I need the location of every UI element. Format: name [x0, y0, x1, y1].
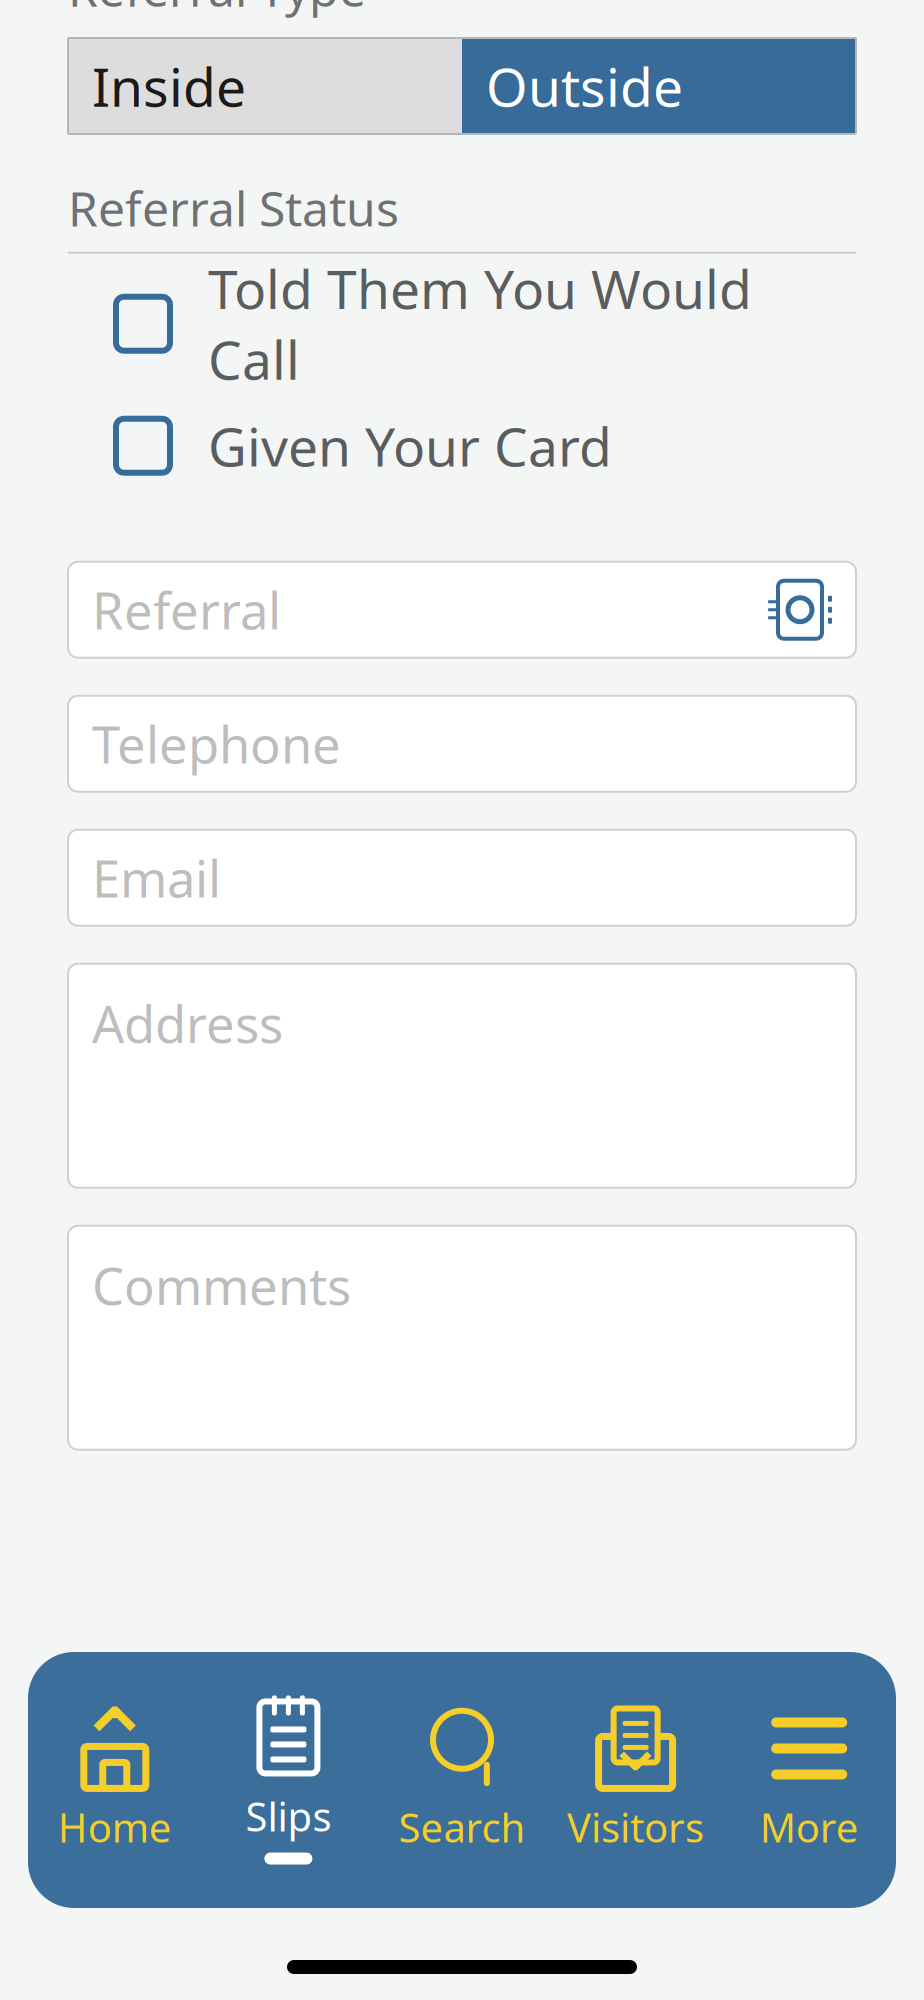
staticText: Comments: [92, 1252, 351, 1319]
button[interactable]: Outside: [462, 38, 856, 134]
staticText: Slips: [245, 1789, 331, 1842]
staticText: Visitors: [567, 1800, 704, 1853]
button[interactable]: ⌃: [28, 1688, 202, 1871]
button[interactable]: Slips: [202, 1677, 375, 1882]
staticText: More: [760, 1800, 859, 1853]
button[interactable]: More: [722, 1688, 896, 1871]
button[interactable]: Given Your Card: [68, 408, 856, 484]
button[interactable]: ⌄: [549, 1688, 722, 1871]
staticText: ⌃: [73, 1688, 156, 1800]
staticText: Outside: [486, 51, 683, 121]
staticText: Search: [398, 1800, 525, 1853]
staticText: Given Your Card: [208, 410, 612, 481]
button[interactable]: Told Them You Would Call: [68, 286, 856, 362]
staticText: Told Them You Would Call: [208, 253, 752, 394]
button[interactable]: Search: [375, 1688, 549, 1871]
staticText: Referral: [92, 576, 281, 643]
button[interactable]: Choose contact: [758, 568, 842, 652]
button[interactable]: Inside: [68, 38, 462, 134]
staticText: ⌄: [604, 1702, 667, 1787]
staticText: Email: [92, 844, 221, 911]
staticText: Telephone: [92, 710, 341, 777]
staticText: Referral Status: [68, 176, 399, 240]
staticText: Home: [58, 1800, 172, 1853]
staticText: Referral Type: [68, 0, 366, 20]
staticText: Address: [92, 990, 283, 1057]
staticText: Inside: [92, 51, 246, 121]
